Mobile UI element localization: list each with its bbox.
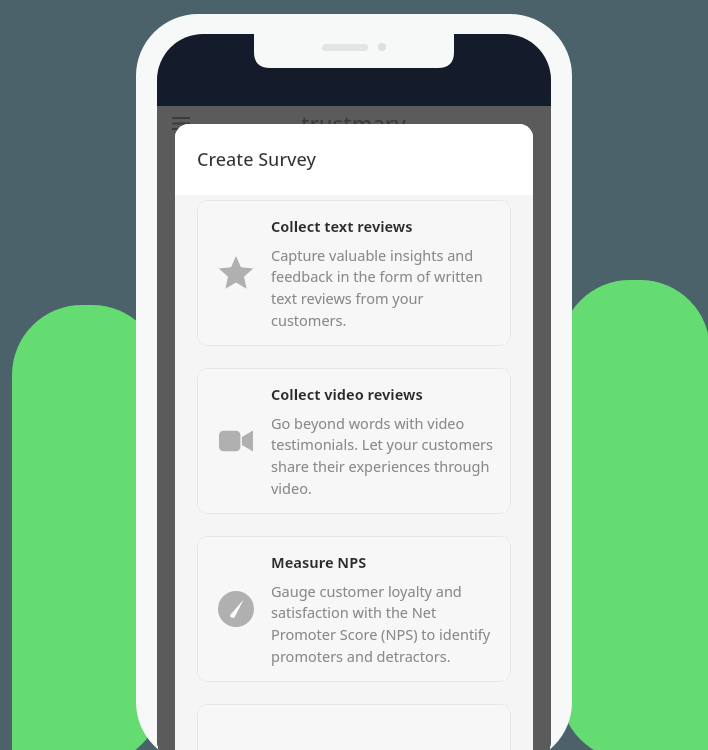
button[interactable]: Measure NPS	[197, 536, 511, 682]
staticText: Go beyond words with video testimonials.…	[271, 413, 495, 498]
button[interactable]: Collect video reviews	[197, 368, 511, 514]
staticText: Capture valuable insights and feedback i…	[271, 245, 495, 330]
staticText: Measure NPS	[271, 552, 367, 572]
other: Collect text reviews	[207, 244, 265, 302]
staticText: Gauge customer loyalty and satisfaction …	[271, 581, 495, 666]
staticText: Collect text reviews	[271, 216, 413, 236]
staticText: Create Survey	[197, 147, 316, 172]
other: Collect video reviews	[207, 412, 265, 470]
staticText: trustmary	[301, 108, 406, 138]
staticText: Collect video reviews	[271, 384, 423, 404]
button[interactable]: Collect text reviews	[197, 200, 511, 346]
other: Measure NPS	[207, 580, 265, 638]
